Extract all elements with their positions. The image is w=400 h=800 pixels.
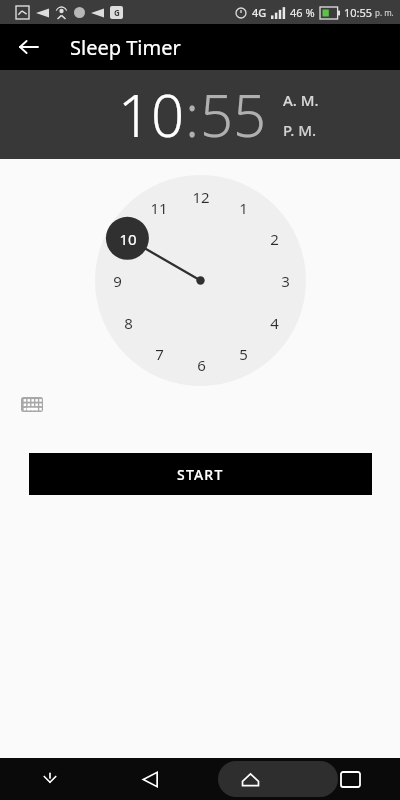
button[interactable]: 6 — [185, 349, 217, 381]
button[interactable]: P. M. — [283, 120, 317, 140]
button[interactable]: 9 — [101, 265, 133, 297]
button[interactable]: Hide keyboard — [0, 758, 100, 800]
staticText: 9 — [113, 271, 122, 291]
button[interactable]: 5 — [227, 338, 259, 370]
staticText: P. M. — [283, 120, 317, 140]
staticText: A. M. — [283, 90, 319, 110]
button[interactable]: 12 — [185, 181, 217, 213]
button[interactable]: 1 — [227, 192, 259, 224]
button[interactable]: Recent apps — [300, 758, 400, 800]
staticText: 10:55 — [344, 5, 373, 20]
button[interactable]: Switch to text input — [18, 390, 46, 418]
staticText: Sleep Timer — [70, 34, 181, 61]
button[interactable]: Back — [12, 30, 46, 64]
staticText: : — [185, 75, 200, 154]
button[interactable]: A. M. — [283, 90, 319, 110]
staticText: 4 — [270, 313, 279, 333]
button[interactable]: 7 — [143, 338, 175, 370]
staticText: G — [114, 7, 120, 18]
button[interactable]: 10 — [112, 223, 144, 255]
button[interactable]: 2 — [258, 223, 290, 255]
button[interactable]: 4 — [258, 307, 290, 339]
staticText: 4G — [252, 5, 267, 20]
staticText: 6 — [197, 355, 206, 375]
staticText: 10 — [118, 75, 185, 154]
button[interactable]: 11 — [143, 192, 175, 224]
staticText: 11 — [150, 198, 168, 218]
staticText: p. m. — [375, 7, 394, 18]
staticText: 1 — [239, 198, 248, 218]
staticText: 55 — [200, 75, 267, 154]
staticText: 3 — [281, 271, 290, 291]
staticText: START — [177, 465, 224, 484]
staticText: 8 — [124, 313, 133, 333]
button[interactable]: 3 — [269, 265, 301, 297]
staticText: 2 — [270, 229, 279, 249]
staticText: 46 % — [290, 5, 315, 20]
staticText: 7 — [155, 344, 164, 364]
button[interactable]: 8 — [112, 307, 144, 339]
staticText: 5 — [239, 344, 248, 364]
staticText: 10 — [119, 229, 137, 249]
button[interactable]: 10 — [118, 75, 185, 154]
button[interactable]: Home — [200, 758, 300, 800]
button[interactable]: 55 — [200, 75, 267, 154]
button[interactable]: Back — [100, 758, 200, 800]
button[interactable]: START — [29, 453, 372, 495]
staticText: 12 — [192, 187, 210, 207]
